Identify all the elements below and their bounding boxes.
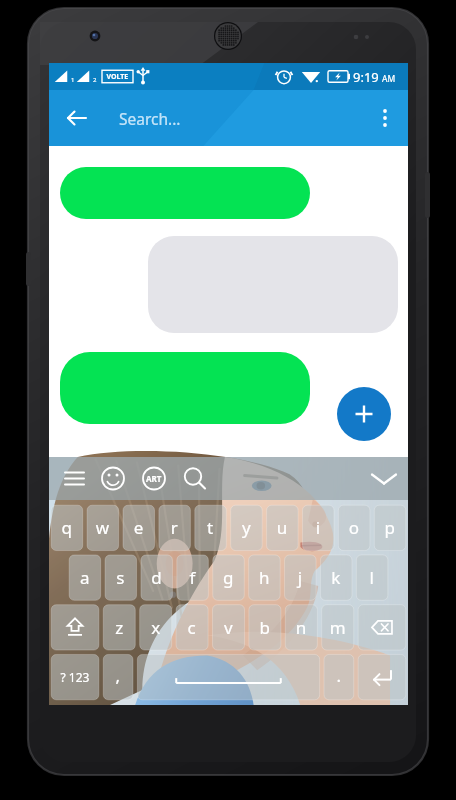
- button[interactable]: h: [246, 552, 281, 601]
- button[interactable]: Sent message: [60, 167, 310, 219]
- button[interactable]: b: [246, 602, 282, 651]
- button[interactable]: Period: [321, 652, 355, 701]
- button[interactable]: r: [156, 503, 191, 552]
- button[interactable]: Shift: [49, 602, 101, 651]
- button[interactable]: m: [319, 602, 355, 651]
- button[interactable]: Symbols: [49, 652, 101, 701]
- button[interactable]: o: [336, 503, 371, 552]
- button[interactable]: Art: [141, 465, 167, 493]
- button[interactable]: Space: [135, 652, 321, 701]
- button[interactable]: Enter: [355, 652, 407, 701]
- button[interactable]: d: [138, 552, 173, 601]
- button[interactable]: Add: [337, 387, 391, 441]
- button[interactable]: z: [101, 602, 137, 651]
- button[interactable]: k: [318, 552, 353, 601]
- button[interactable]: u: [264, 503, 299, 552]
- button[interactable]: Sent message: [60, 352, 310, 424]
- button[interactable]: Backspace: [355, 602, 407, 651]
- button[interactable]: Emoji: [101, 465, 127, 493]
- button[interactable]: Comma: [101, 652, 135, 701]
- button[interactable]: e: [120, 503, 155, 552]
- button[interactable]: Hide keyboard: [362, 465, 402, 493]
- button[interactable]: a: [66, 552, 101, 601]
- button[interactable]: Received message: [148, 236, 398, 333]
- button[interactable]: Search: [179, 465, 209, 493]
- button[interactable]: x: [137, 602, 173, 651]
- button[interactable]: l: [354, 552, 389, 601]
- button[interactable]: c: [173, 602, 209, 651]
- button[interactable]: g: [210, 552, 245, 601]
- button[interactable]: p: [372, 503, 407, 552]
- button[interactable]: q: [49, 503, 84, 552]
- button[interactable]: j: [282, 552, 317, 601]
- button[interactable]: y: [228, 503, 263, 552]
- button[interactable]: i: [300, 503, 335, 552]
- button[interactable]: v: [210, 602, 246, 651]
- button[interactable]: t: [192, 503, 227, 552]
- button[interactable]: n: [283, 602, 319, 651]
- button[interactable]: Menu: [57, 465, 91, 493]
- button[interactable]: s: [102, 552, 137, 601]
- button[interactable]: w: [84, 503, 119, 552]
- button[interactable]: f: [174, 552, 209, 601]
